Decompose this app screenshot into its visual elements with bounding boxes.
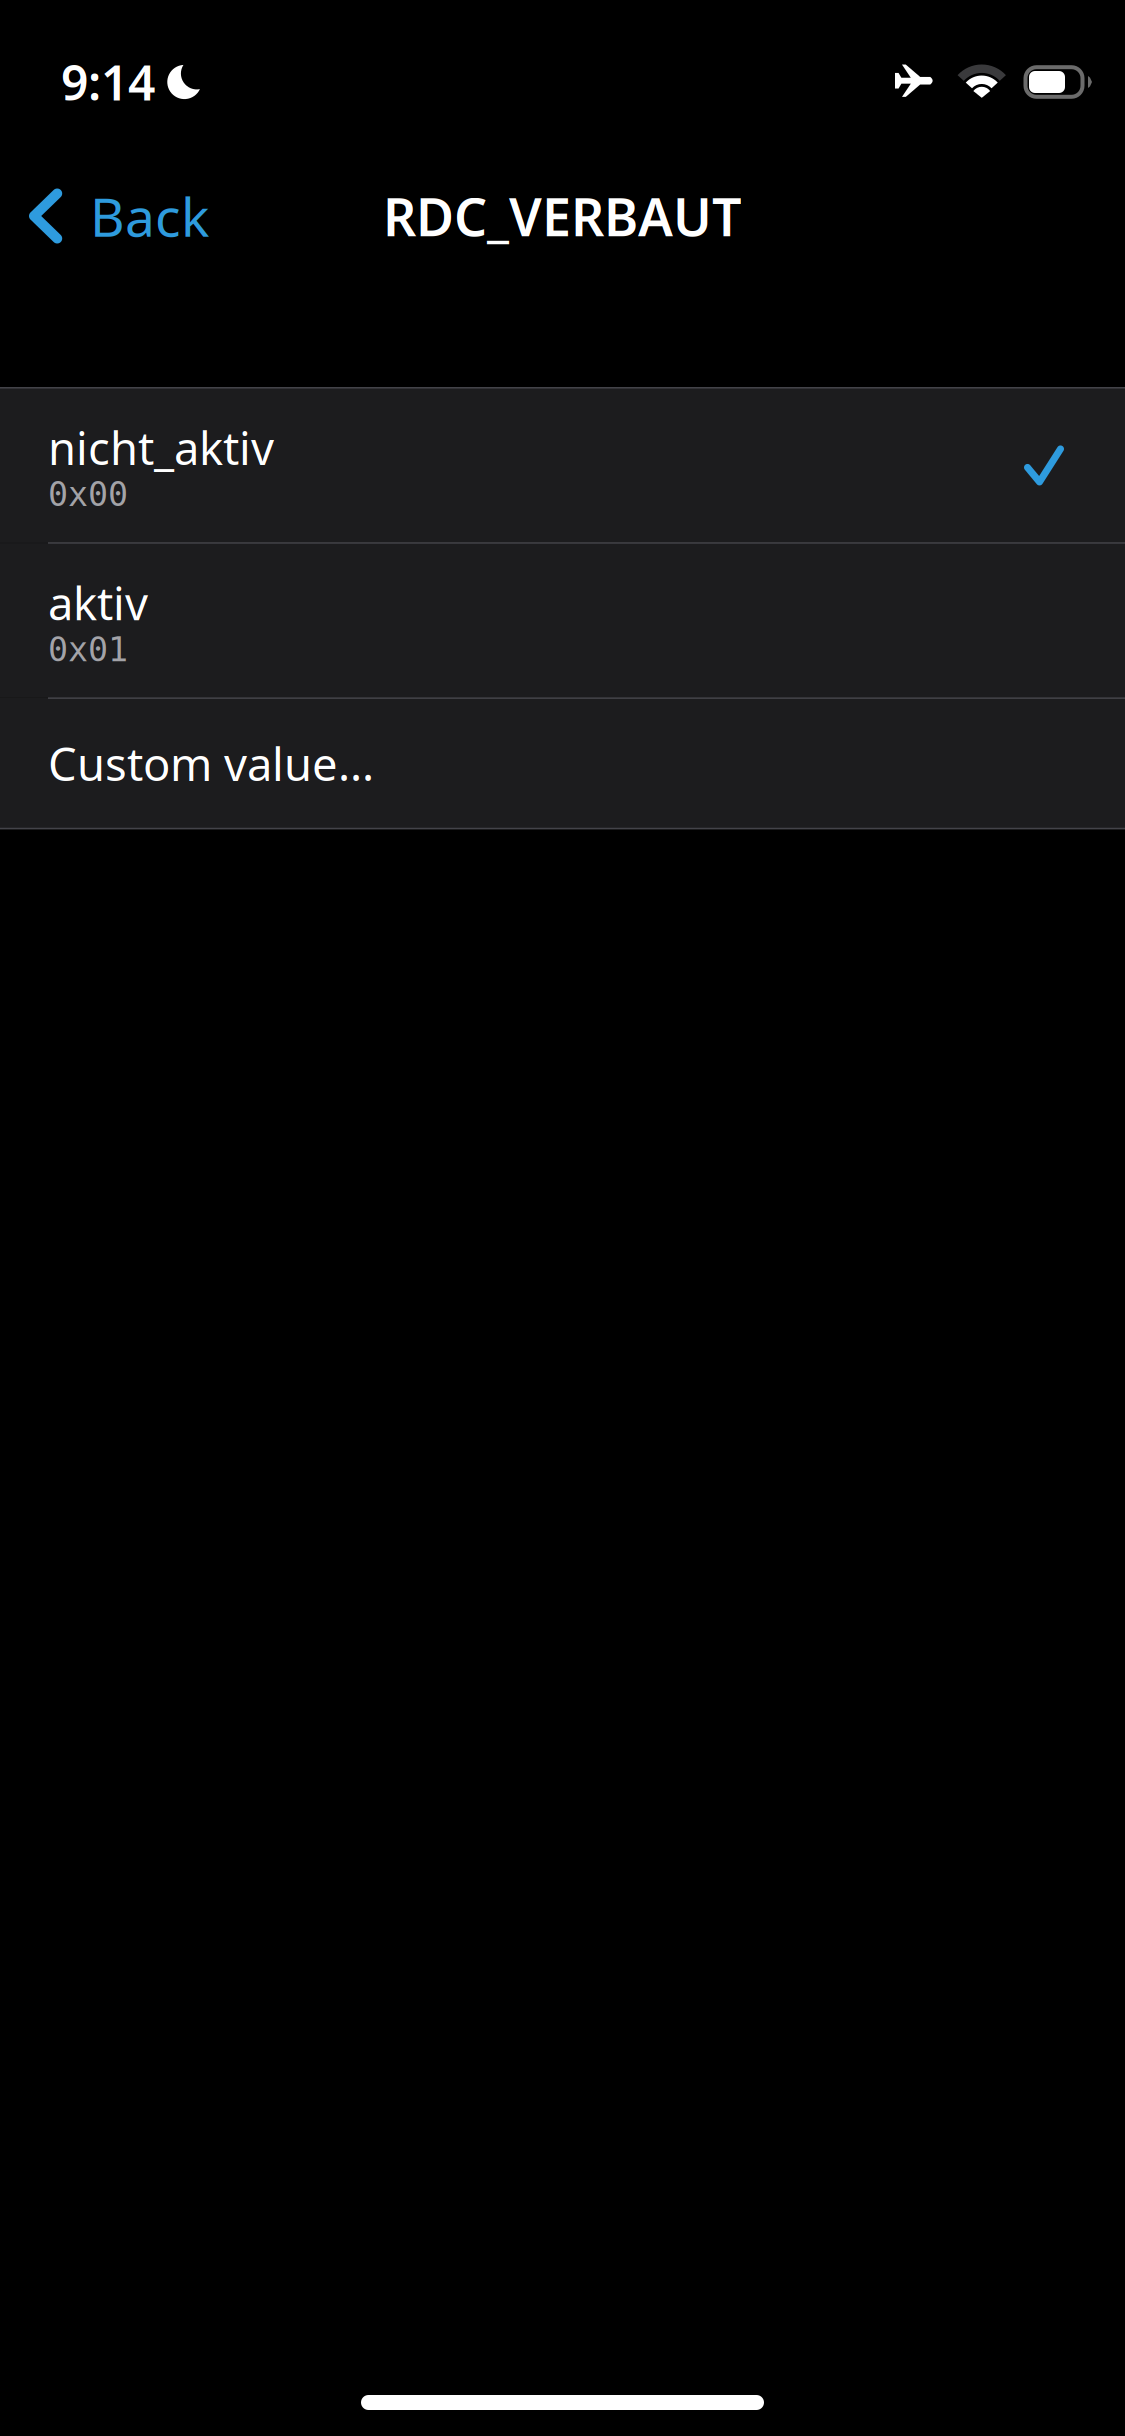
button[interactable]: Back [0, 167, 209, 265]
staticText: 0x00 [48, 476, 128, 513]
staticText: Custom value... [48, 733, 374, 793]
staticText: nicht_aktiv [48, 417, 274, 478]
staticText: aktiv [48, 572, 148, 633]
staticText: 0x01 [48, 631, 128, 668]
button[interactable]: aktiv [0, 544, 1125, 697]
staticText: Back [90, 181, 209, 251]
staticText: RDC_VERBAUT [383, 181, 742, 251]
button[interactable]: nicht_aktiv [0, 389, 1125, 542]
staticText: 9:14 [61, 50, 155, 114]
button[interactable]: Custom value... [0, 699, 1125, 828]
